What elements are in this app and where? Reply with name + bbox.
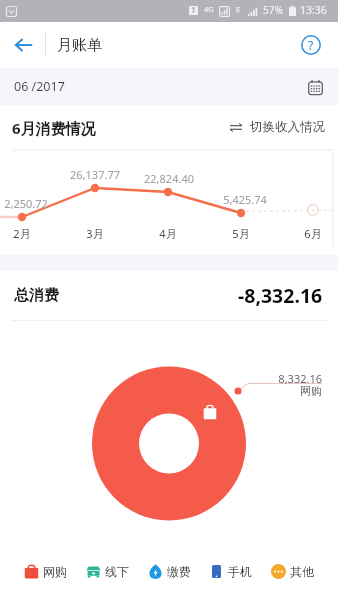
staticText: 13:36 bbox=[300, 3, 327, 17]
staticText: E bbox=[236, 4, 241, 14]
staticText: 月账单 bbox=[57, 36, 102, 55]
staticText: 22,824.40 bbox=[139, 171, 199, 186]
staticText: 手机 bbox=[228, 564, 252, 579]
staticText: 4G bbox=[204, 4, 214, 14]
staticText: 切换收入情况 bbox=[250, 119, 325, 135]
staticText: ? bbox=[308, 37, 314, 53]
button[interactable]: 其他 bbox=[269, 564, 316, 579]
button[interactable]: 线下 bbox=[84, 564, 131, 579]
staticText: 26,137.77 bbox=[65, 167, 125, 182]
staticText: 其他 bbox=[290, 564, 314, 579]
staticText: 网购 bbox=[43, 564, 67, 579]
staticText: 06 /2017 bbox=[14, 78, 65, 95]
staticText: 57% bbox=[263, 3, 283, 17]
button[interactable]: Back bbox=[5, 22, 41, 68]
staticText: 2月 bbox=[7, 226, 37, 241]
staticText: 4月 bbox=[153, 226, 183, 241]
button[interactable]: 切换收入情况 bbox=[229, 119, 325, 135]
staticText: 6月 bbox=[298, 226, 328, 241]
staticText: 网购 bbox=[240, 384, 322, 398]
staticText: 线下 bbox=[105, 564, 129, 579]
staticText: 2,250.72 bbox=[0, 196, 56, 211]
staticText: 5月 bbox=[226, 226, 256, 241]
button[interactable]: Pick month bbox=[301, 73, 329, 101]
staticText: 总消费 bbox=[14, 286, 59, 305]
button[interactable]: 缴费 bbox=[146, 564, 193, 579]
staticText: 5,425.74 bbox=[215, 192, 275, 207]
staticText: 3月 bbox=[80, 226, 110, 241]
staticText: 8,332.16 bbox=[240, 371, 322, 386]
staticText: -8,332.16 bbox=[238, 282, 323, 309]
button[interactable]: 网购 bbox=[22, 564, 69, 579]
button[interactable]: 手机 bbox=[207, 564, 254, 579]
staticText: 6月消费情况 bbox=[12, 118, 96, 138]
staticText: 缴费 bbox=[167, 564, 191, 579]
button[interactable]: Help bbox=[293, 22, 329, 68]
